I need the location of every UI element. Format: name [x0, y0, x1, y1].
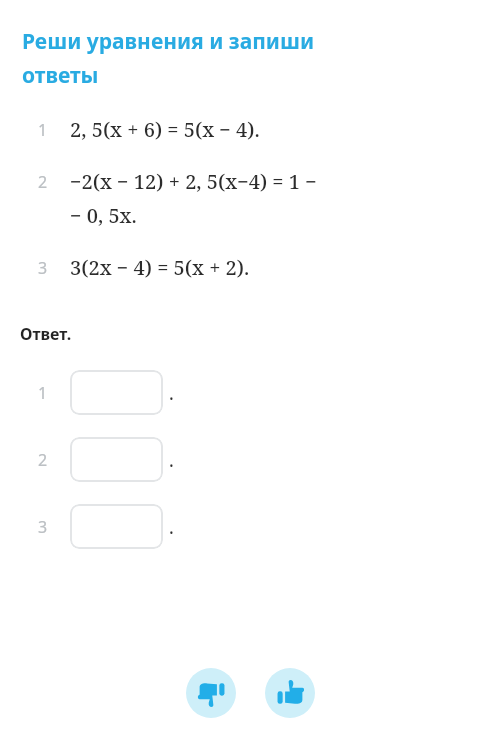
staticText: .: [169, 514, 174, 540]
staticText: 1: [38, 382, 70, 404]
staticText: 1: [38, 119, 70, 141]
button[interactable]: Like: [265, 668, 315, 718]
button[interactable]: [70, 437, 163, 482]
button[interactable]: [70, 504, 163, 549]
staticText: 3: [38, 516, 70, 538]
staticText: − 0, 5x.: [70, 202, 137, 229]
staticText: 2, 5(x + 6) = 5(x − 4).: [70, 116, 260, 143]
staticText: 2: [38, 449, 70, 471]
staticText: 3: [38, 257, 70, 279]
staticText: 2: [38, 171, 70, 193]
staticText: Ответ.: [20, 323, 72, 345]
staticText: 3(2x − 4) = 5(x + 2).: [70, 254, 250, 281]
staticText: −2(x − 12) + 2, 5(x−4) = 1 −: [70, 168, 317, 195]
button[interactable]: Dislike: [186, 668, 236, 718]
staticText: .: [169, 380, 174, 406]
staticText: .: [169, 447, 174, 473]
staticText: Реши уравнения и запиши ответы: [22, 27, 315, 89]
button[interactable]: [70, 370, 163, 415]
